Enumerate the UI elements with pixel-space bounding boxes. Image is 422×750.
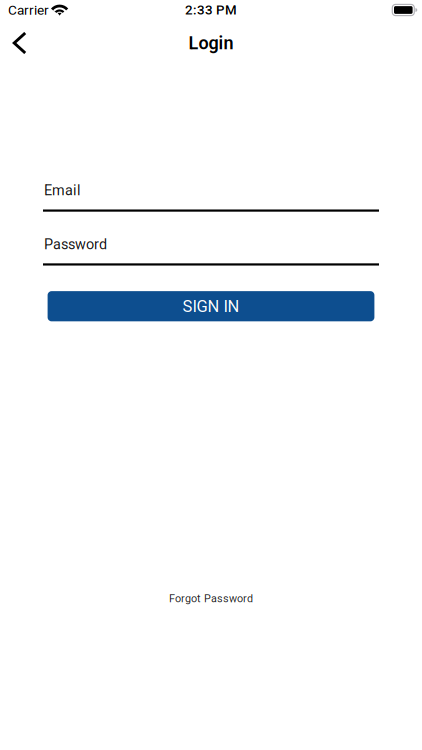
staticText: Carrier xyxy=(8,2,49,18)
staticText: 2:33 PM xyxy=(185,2,237,18)
button[interactable]: Password xyxy=(43,236,379,266)
staticText: Forgot Password xyxy=(169,592,253,605)
button[interactable]: SIGN IN xyxy=(48,291,374,321)
button[interactable]: Back xyxy=(0,25,42,61)
staticText: Login xyxy=(188,32,233,54)
button[interactable]: Forgot Password xyxy=(169,592,253,605)
button[interactable]: Email xyxy=(43,182,379,212)
staticText: Password xyxy=(44,236,107,253)
staticText: SIGN IN xyxy=(182,297,239,316)
staticText: Email xyxy=(44,182,81,199)
